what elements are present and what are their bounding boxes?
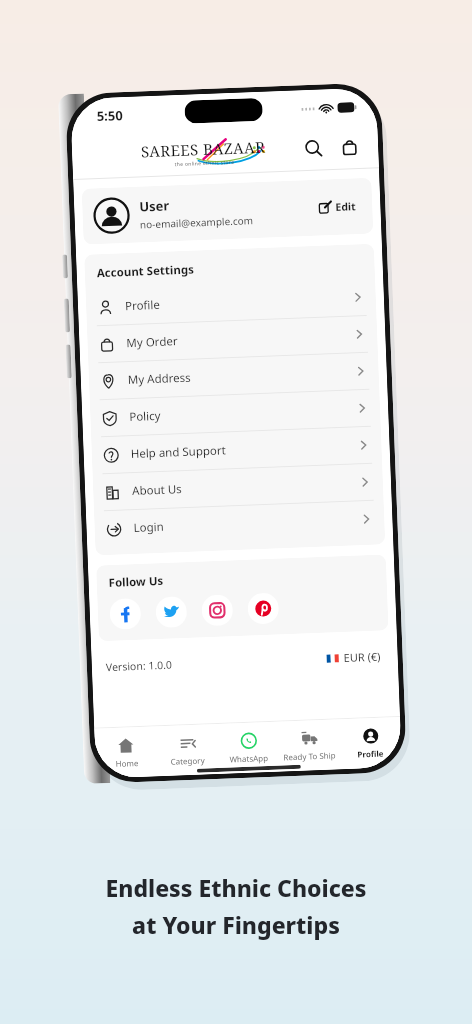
button[interactable]: Instagram	[201, 594, 233, 626]
staticText: SAREES BAZAAR	[141, 137, 266, 161]
button[interactable]: EUR (€)	[323, 645, 384, 669]
staticText: EUR (€)	[343, 649, 381, 665]
button[interactable]: Cart	[336, 133, 363, 160]
button[interactable]: Edit	[315, 195, 361, 219]
button[interactable]: User	[81, 178, 373, 245]
button[interactable]: Facebook	[109, 598, 141, 630]
staticText: the online ethnic store	[174, 159, 235, 168]
staticText: Follow Us	[108, 573, 164, 591]
button[interactable]: Profile	[85, 278, 377, 326]
button[interactable]: Category	[156, 724, 219, 776]
staticText: WhatsApp	[229, 752, 269, 764]
staticText: User	[139, 196, 170, 215]
staticText: 5:50	[96, 106, 123, 125]
staticText: Profile	[125, 289, 352, 314]
staticText: Endless Ethnic Choices	[105, 872, 367, 903]
button[interactable]: Login	[94, 500, 385, 547]
staticText: My Order	[126, 326, 354, 351]
button[interactable]: Pinterest	[247, 592, 279, 625]
staticText: at Your Fingertips	[132, 909, 340, 940]
button[interactable]: My Address	[88, 352, 379, 400]
button[interactable]: Policy	[90, 389, 381, 437]
button[interactable]: WhatsApp	[217, 722, 280, 774]
staticText: My Address	[128, 363, 355, 388]
staticText: Account Settings	[96, 261, 195, 281]
staticText: Category	[170, 754, 206, 767]
staticText: Edit	[335, 199, 357, 214]
staticText: About Us	[132, 474, 359, 499]
staticText: Version: 1.0.0	[106, 658, 173, 674]
button[interactable]: Search	[300, 134, 327, 161]
button[interactable]: Profile	[339, 717, 402, 769]
button[interactable]: Ready To Ship	[278, 719, 341, 772]
staticText: no-email@example.com	[140, 213, 254, 232]
staticText: Profile	[357, 747, 385, 759]
button[interactable]: Home	[94, 726, 158, 779]
staticText: Home	[115, 757, 139, 769]
button[interactable]: My Order	[87, 315, 378, 363]
staticText: Ready To Ship	[283, 749, 337, 762]
staticText: Help and Support	[130, 437, 358, 462]
button[interactable]: Twitter	[155, 596, 187, 628]
staticText: Login	[133, 511, 361, 536]
staticText: Policy	[129, 400, 356, 425]
button[interactable]: Help and Support	[91, 426, 382, 473]
button[interactable]: About Us	[92, 463, 384, 510]
